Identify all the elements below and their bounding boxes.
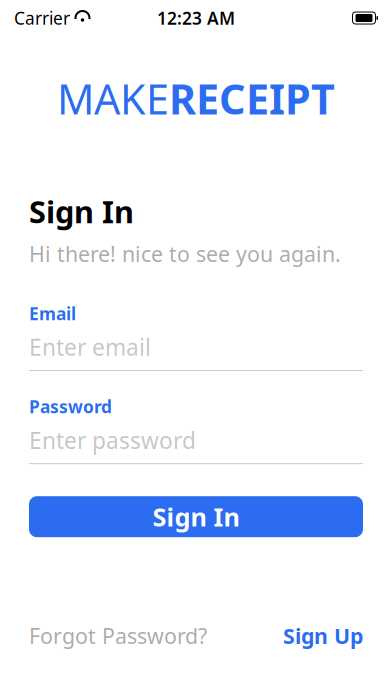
staticText: Sign In — [29, 191, 134, 232]
button[interactable]: Sign Up — [283, 622, 363, 650]
staticText: Enter password — [29, 425, 196, 455]
button[interactable]: Sign In — [29, 496, 363, 537]
staticText: Enter email — [29, 332, 151, 362]
staticText: Carrier — [14, 6, 70, 29]
staticText: Email — [29, 302, 76, 325]
staticText: Password — [29, 395, 112, 418]
staticText: RECEIPT — [169, 71, 335, 126]
staticText: MAKE — [57, 71, 169, 126]
staticText: 12:23 AM — [157, 6, 235, 29]
staticText: Hi there! nice to see you again. — [29, 240, 341, 268]
staticText: Sign Up — [283, 622, 363, 650]
staticText: Forgot Password? — [29, 622, 207, 650]
button[interactable]: Forgot Password? — [29, 622, 207, 650]
staticText: Sign In — [152, 500, 239, 533]
